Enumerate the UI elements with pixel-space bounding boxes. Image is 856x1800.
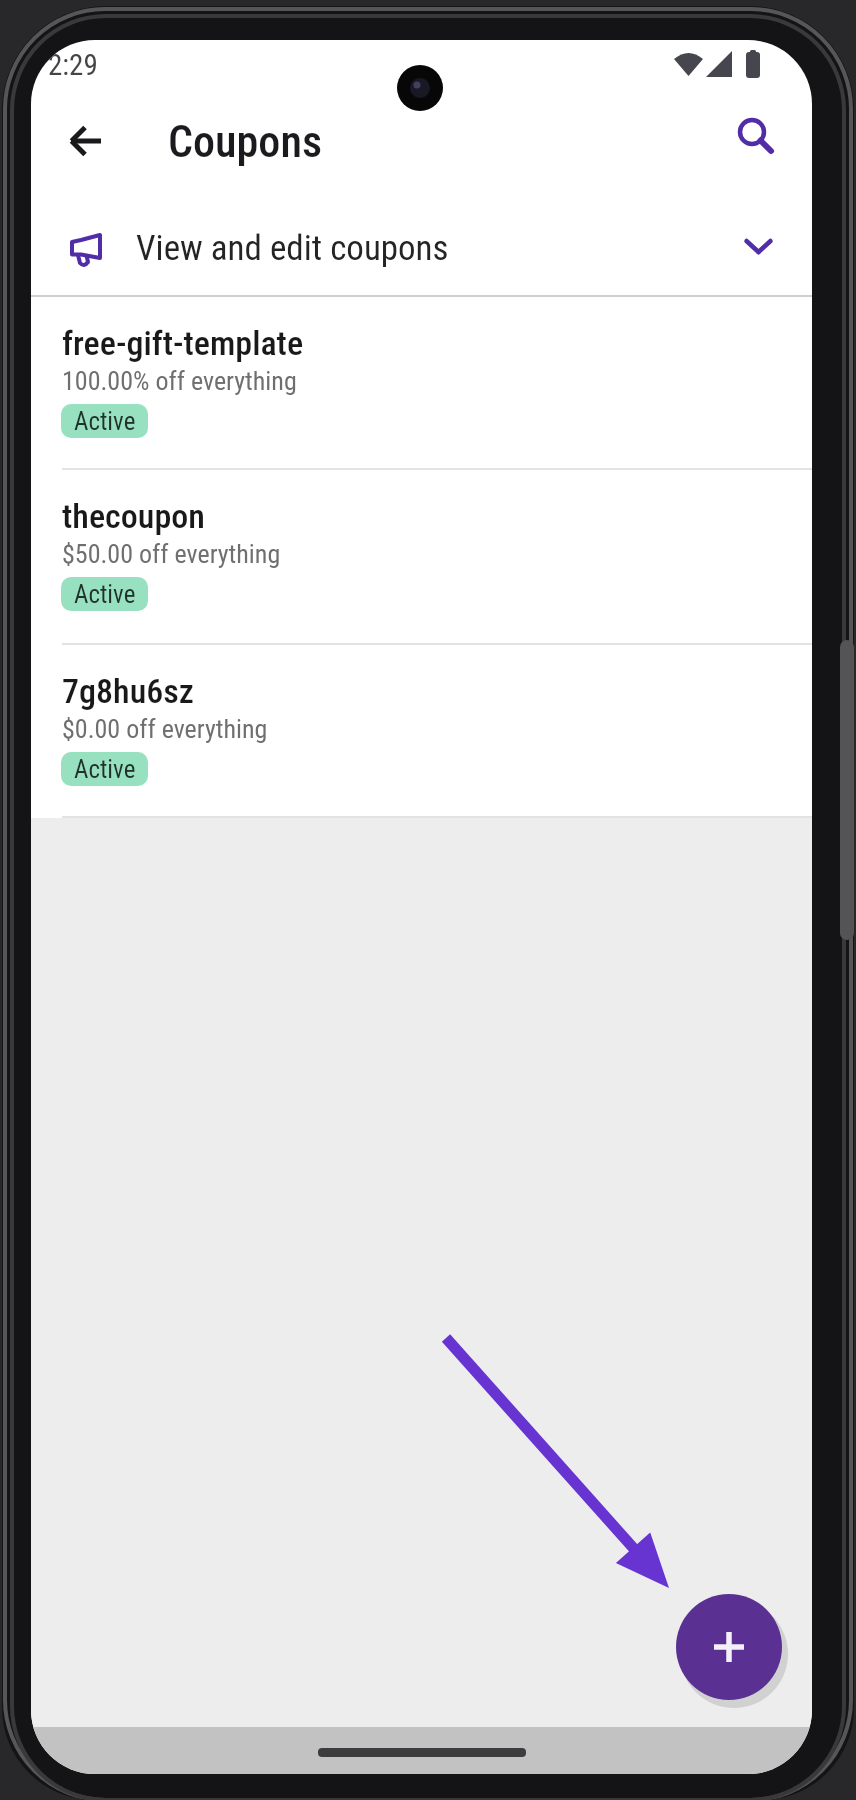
staticText: free-gift-template	[62, 323, 304, 363]
staticText: $0.00 off everything	[62, 714, 268, 744]
staticText: thecoupon	[62, 496, 205, 536]
staticText: 2:29	[48, 48, 98, 82]
staticText: Active	[74, 755, 136, 784]
button[interactable]: 7g8hu6sz	[31, 645, 812, 818]
button[interactable]: free-gift-template	[31, 297, 812, 470]
button[interactable]: View and edit coupons	[31, 206, 812, 295]
staticText: $50.00 off everything	[62, 539, 281, 569]
staticText: 7g8hu6sz	[62, 671, 194, 711]
button[interactable]	[729, 110, 785, 166]
staticText: 100.00% off everything	[62, 366, 297, 396]
button[interactable]: thecoupon	[31, 470, 812, 645]
staticText: Active	[74, 580, 136, 609]
staticText: Coupons	[168, 116, 322, 168]
staticText: Active	[74, 407, 136, 436]
button[interactable]	[59, 114, 113, 168]
button[interactable]	[676, 1594, 782, 1700]
staticText: View and edit coupons	[136, 228, 449, 269]
